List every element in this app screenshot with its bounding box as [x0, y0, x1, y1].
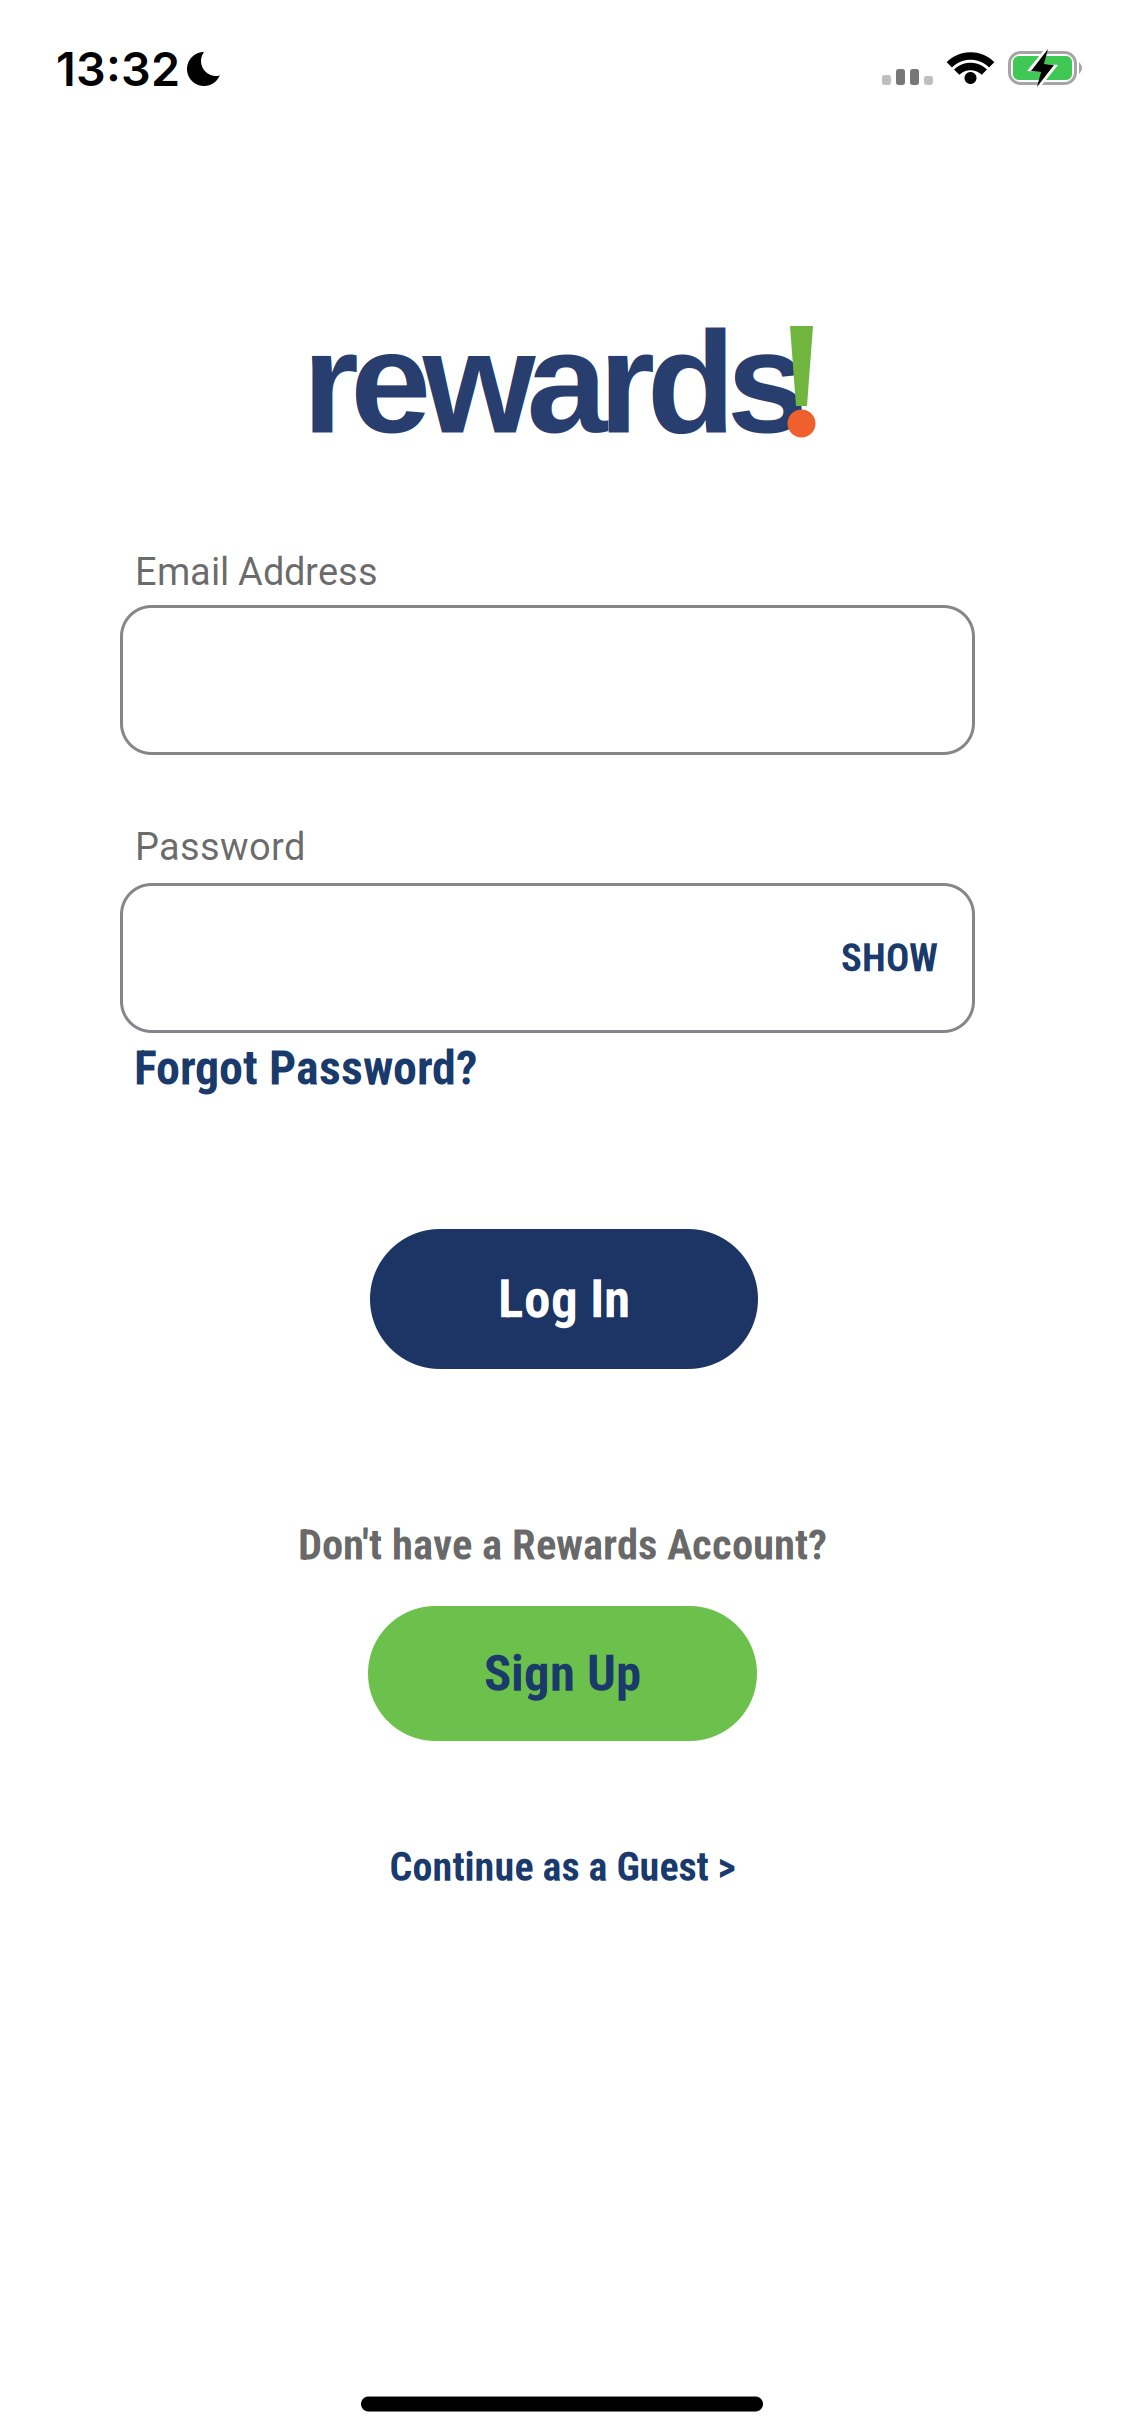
staticText: Password: [135, 825, 305, 869]
staticText: Email Address: [135, 550, 378, 594]
staticText: Continue as a Guest >: [389, 1844, 735, 1890]
button[interactable]: [120, 605, 975, 755]
staticText: 13:32: [56, 41, 180, 97]
button[interactable]: Sign Up: [368, 1606, 757, 1741]
staticText: Log In: [498, 1268, 630, 1330]
button[interactable]: Log In: [370, 1229, 758, 1369]
button[interactable]: Forgot Password?: [134, 1040, 834, 1096]
staticText: Don't have a Rewards Account?: [298, 1520, 827, 1570]
button[interactable]: SHOW: [738, 935, 938, 981]
staticText: Forgot Password?: [134, 1040, 477, 1096]
staticText: rewards: [302, 301, 808, 463]
button[interactable]: Continue as a Guest >: [389, 1844, 735, 1890]
staticText: Sign Up: [484, 1644, 641, 1703]
staticText: SHOW: [841, 935, 938, 981]
button[interactable]: [120, 883, 975, 1033]
